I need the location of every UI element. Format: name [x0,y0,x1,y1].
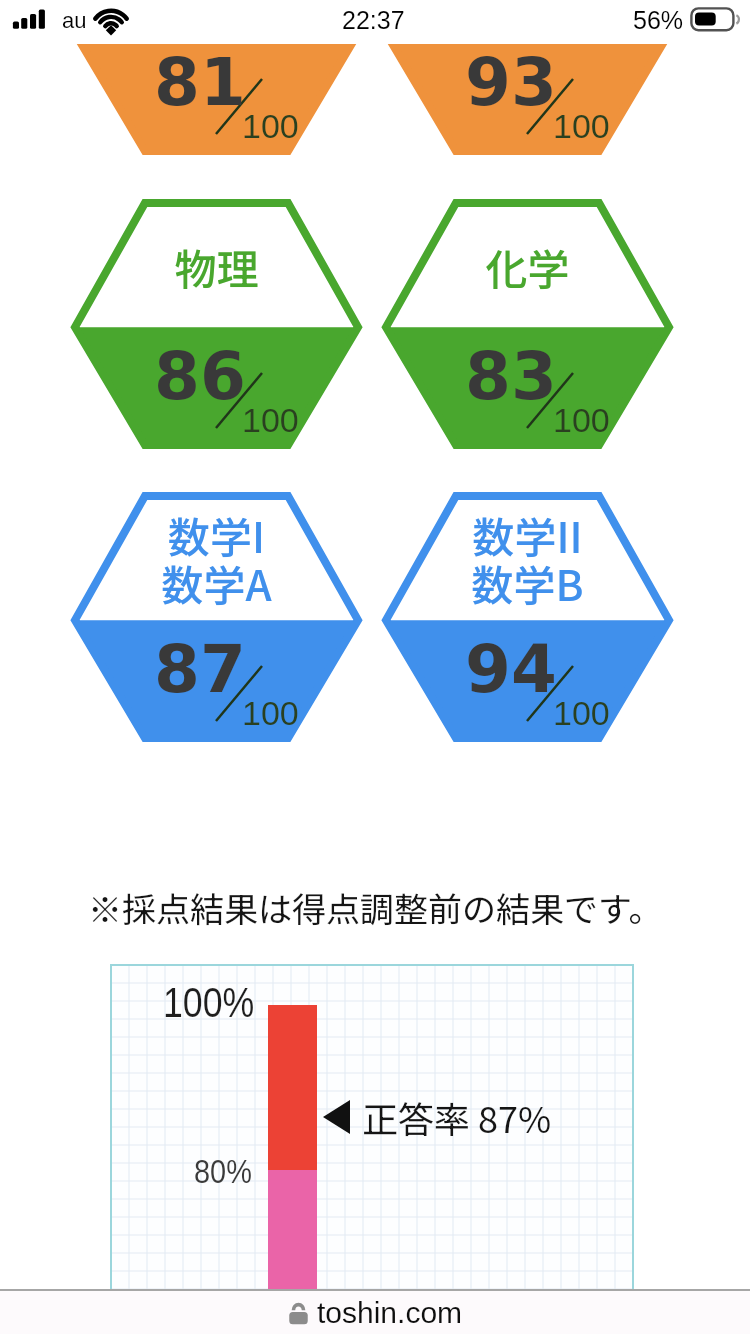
button[interactable]: 化学 [382,236,673,297]
staticText: 87 [154,631,246,708]
staticText: 94 [465,631,557,708]
other: Secure connection [288,1300,309,1327]
staticText: 100 [553,401,610,439]
staticText: 化学 [382,236,673,297]
staticText: 93 [465,44,557,121]
staticText: ※採点結果は得点調整前の結果です。 [88,883,663,932]
staticText: 100 [553,107,610,145]
staticText: 正答率 87% [362,1091,552,1143]
button[interactable]: 数学II 数学B [382,504,673,613]
staticText: 数学I 数学A [71,504,362,613]
button[interactable]: 物理 [71,236,362,297]
staticText: 100 [242,694,299,732]
staticText: au [62,8,87,33]
staticText: 86 [154,338,246,415]
button[interactable]: Secure connection [0,1291,750,1334]
staticText: 81 [154,44,246,121]
staticText: 100% [163,979,255,1026]
staticText: 22:37 [342,6,405,34]
staticText: 100 [242,401,299,439]
staticText: 80% [194,1152,253,1190]
staticText: 83 [465,338,557,415]
button[interactable]: 数学I 数学A [71,504,362,613]
staticText: 数学II 数学B [382,504,673,613]
staticText: 100 [242,107,299,145]
staticText: 100 [553,694,610,732]
staticText: toshin.com [317,1296,463,1330]
staticText: 56% [633,6,684,34]
staticText: 物理 [71,236,362,297]
